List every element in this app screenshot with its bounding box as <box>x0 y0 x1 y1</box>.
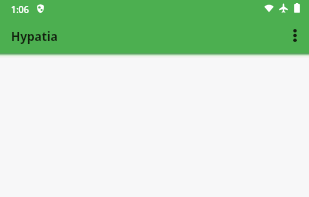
staticText: Hypatia <box>11 28 58 44</box>
staticText: 1:06 <box>11 3 29 15</box>
button[interactable]: More options <box>279 19 309 51</box>
